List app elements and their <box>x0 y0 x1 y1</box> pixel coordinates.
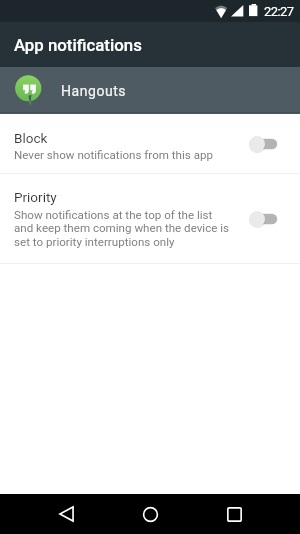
staticText: Never show notifications from this app <box>14 148 214 162</box>
button[interactable]: App notifications <box>0 22 300 67</box>
staticText: Hangouts <box>61 83 127 99</box>
staticText: 22:27 <box>264 4 294 19</box>
button[interactable]: Block <box>0 114 300 173</box>
staticText: Show notifications at the top of the lis… <box>14 208 213 222</box>
staticText: and keep them coming when the device is <box>14 221 230 235</box>
staticText: Priority <box>14 189 57 205</box>
button[interactable]: Recents <box>214 494 254 534</box>
button[interactable]: Home <box>130 494 170 534</box>
staticText: App notifications <box>14 35 142 55</box>
staticText: set to priority interruptions only <box>14 235 175 249</box>
button[interactable]: Toggle <box>241 134 285 154</box>
staticText: Block <box>14 130 48 146</box>
button[interactable]: Priority <box>0 174 300 263</box>
button[interactable]: Hangouts <box>0 67 300 114</box>
button[interactable]: Toggle <box>241 209 285 229</box>
button[interactable]: Back <box>46 494 86 534</box>
